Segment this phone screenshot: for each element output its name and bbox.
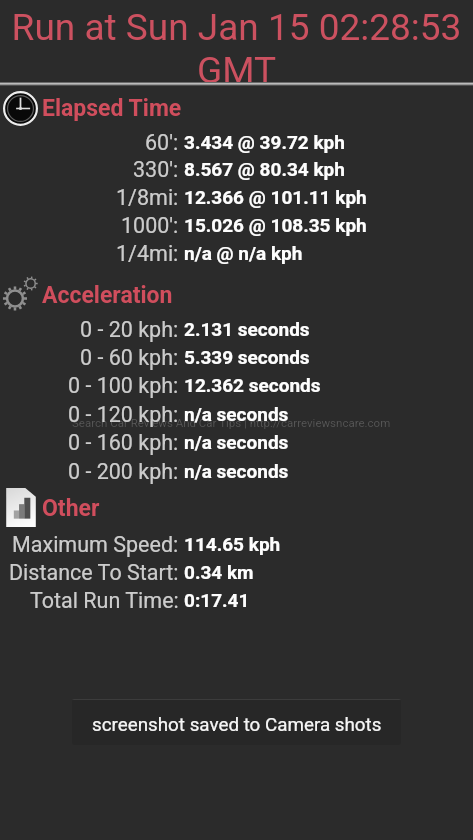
staticText: 330':: [133, 157, 179, 182]
staticText: 5.339 seconds: [184, 346, 310, 368]
staticText: n/a @ n/a kph: [184, 242, 303, 264]
button[interactable]: Elapsed Time: [0, 90, 473, 127]
staticText: n/a seconds: [184, 431, 289, 453]
staticText: Maximum Speed:: [12, 532, 179, 557]
staticText: n/a seconds: [184, 460, 289, 482]
staticText: n/a seconds: [184, 403, 289, 425]
staticText: 0 - 20 kph:: [80, 317, 179, 342]
staticText: Distance To Start:: [9, 560, 179, 585]
staticText: 0 - 120 kph:: [68, 402, 179, 427]
staticText: 0 - 160 kph:: [68, 430, 179, 455]
staticText: 12.362 seconds: [184, 374, 321, 396]
staticText: Elapsed Time: [42, 95, 182, 122]
button[interactable]: screenshot saved to Camera shots: [72, 699, 401, 745]
staticText: screenshot saved to Camera shots: [92, 714, 382, 736]
staticText: 1000':: [121, 213, 179, 238]
button[interactable]: Other: [0, 487, 473, 528]
button[interactable]: Acceleration: [0, 274, 473, 313]
staticText: 15.026 @ 108.35 kph: [184, 214, 367, 236]
staticText: 3.434 @ 39.72 kph: [184, 131, 345, 153]
staticText: 0 - 200 kph:: [68, 459, 179, 484]
staticText: Run at Sun Jan 15 02:28:53 GMT: [0, 6, 473, 92]
staticText: 1/4mi:: [116, 241, 179, 266]
staticText: 0 - 100 kph:: [68, 373, 179, 398]
staticText: 114.65 kph: [184, 533, 281, 555]
staticText: 2.131 seconds: [184, 318, 310, 340]
staticText: 60':: [145, 130, 179, 155]
staticText: 0 - 60 kph:: [80, 345, 179, 370]
staticText: Search Car Reviews And Car Tips | http:/…: [72, 416, 391, 429]
staticText: Acceleration: [42, 282, 173, 309]
staticText: 0.34 km: [184, 561, 254, 583]
staticText: 8.567 @ 80.34 kph: [184, 158, 345, 180]
staticText: 0:17.41: [184, 589, 250, 611]
staticText: Other: [42, 495, 100, 522]
staticText: Total Run Time:: [30, 588, 179, 613]
staticText: 1/8mi:: [116, 185, 179, 210]
staticText: 12.366 @ 101.11 kph: [184, 186, 367, 208]
